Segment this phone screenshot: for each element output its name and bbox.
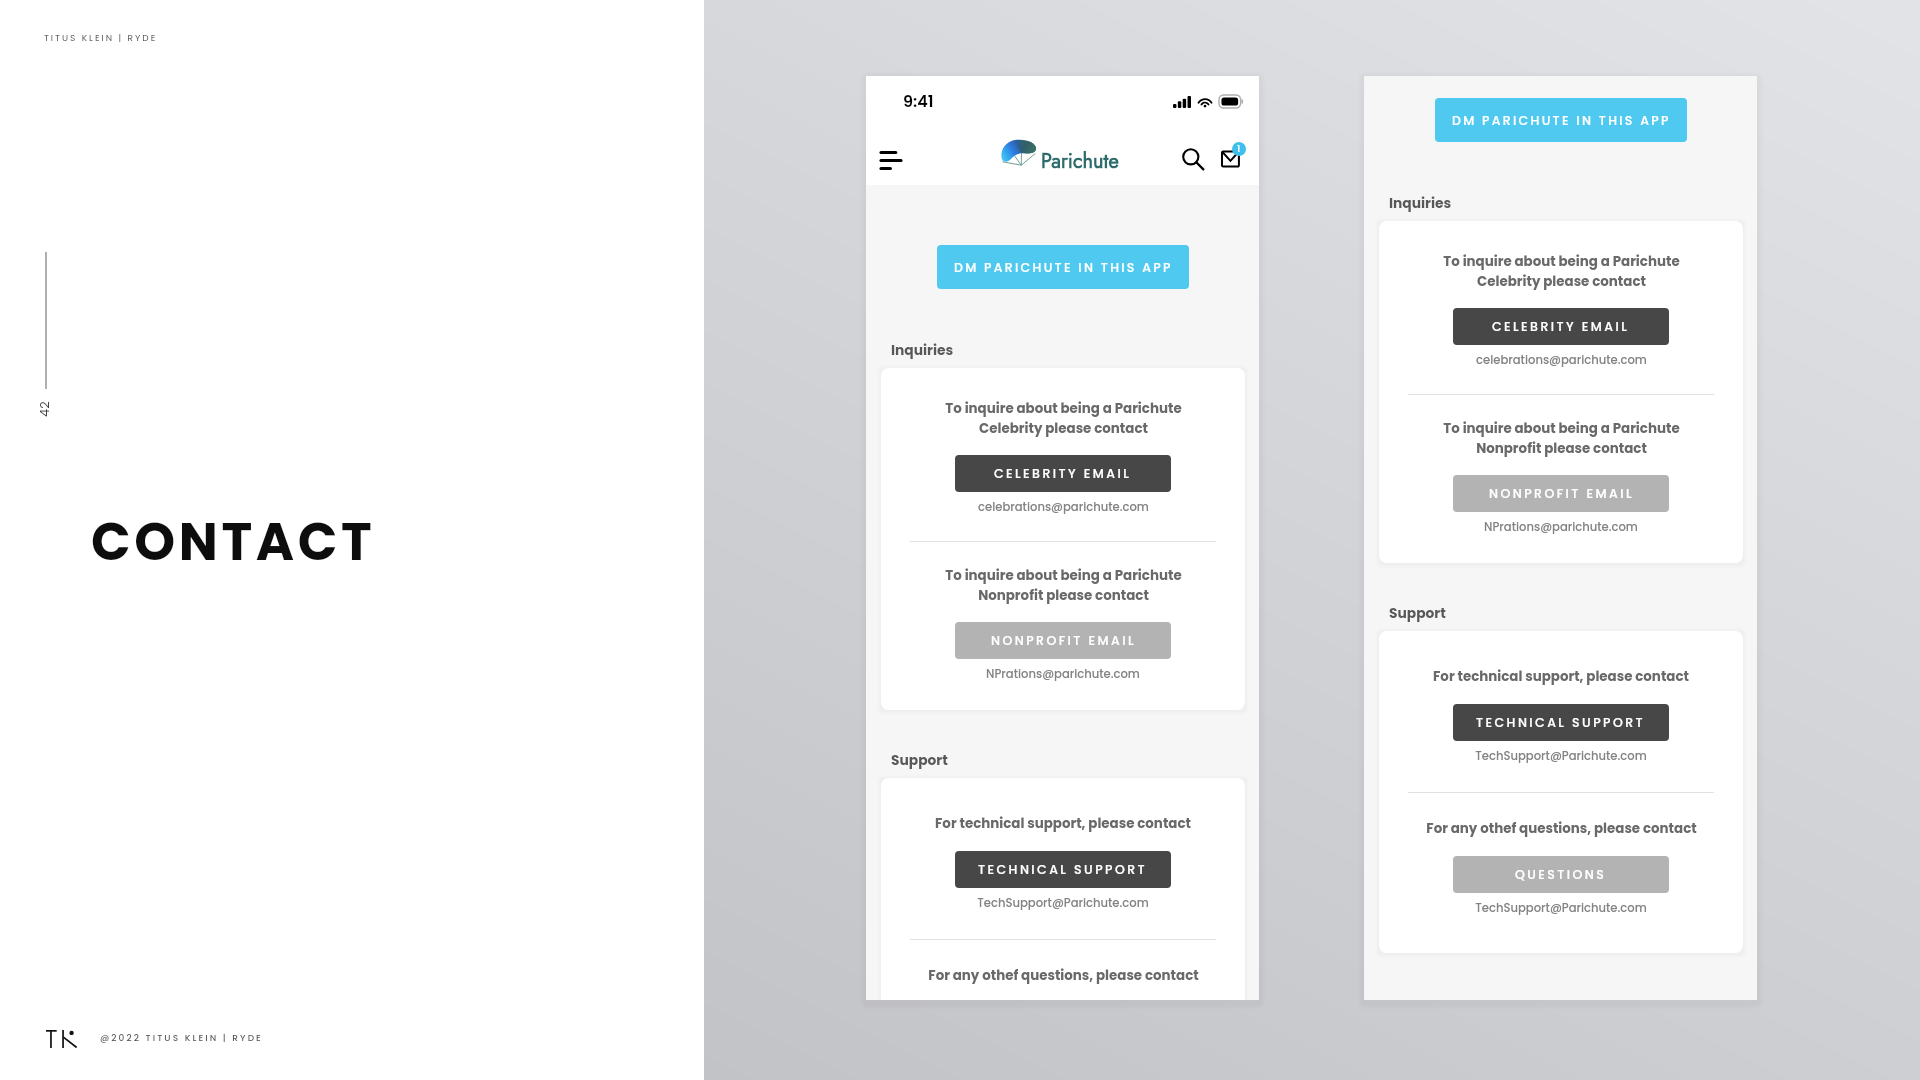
button[interactable]: QUESTIONS xyxy=(1453,856,1669,893)
staticText: celebrations@parichute.com xyxy=(1476,352,1647,368)
staticText: For any othef questions, please contact xyxy=(1426,819,1697,838)
staticText: To inquire about being a Parichute Celeb… xyxy=(1443,252,1680,290)
staticText: Support xyxy=(1389,604,1446,623)
button[interactable]: Menu xyxy=(873,142,909,178)
staticText: @2022 TITUS KLEIN | RYDE xyxy=(100,1032,263,1045)
button[interactable]: TECHNICAL SUPPORT xyxy=(1453,704,1669,741)
staticText: For technical support, please contact xyxy=(1433,667,1689,686)
staticText: CONTACT xyxy=(91,505,376,578)
button[interactable]: DM PARICHUTE IN THIS APP xyxy=(937,245,1189,289)
button[interactable]: DM PARICHUTE IN THIS APP xyxy=(1435,98,1687,142)
staticText: CELEBRITY EMAIL xyxy=(994,465,1132,482)
staticText: For technical support, please contact xyxy=(935,814,1191,833)
button[interactable]: TECHNICAL SUPPORT xyxy=(955,851,1171,888)
staticText: TITUS KLEIN | RYDE xyxy=(44,32,158,45)
button[interactable]: CELEBRITY EMAIL xyxy=(1453,308,1669,345)
staticText: TechSupport@Parichute.com xyxy=(1475,748,1647,764)
button[interactable]: NONPROFIT EMAIL xyxy=(1453,475,1669,512)
staticText: Support xyxy=(891,751,948,770)
staticText: NPrations@parichute.com xyxy=(986,666,1140,682)
staticText: Parichute xyxy=(1041,147,1119,176)
staticText: NPrations@parichute.com xyxy=(1484,519,1638,535)
staticText: TECHNICAL SUPPORT xyxy=(1476,714,1646,731)
staticText: QUESTIONS xyxy=(1515,866,1607,883)
staticText: Inquiries xyxy=(891,341,954,360)
staticText: To inquire about being a Parichute Nonpr… xyxy=(945,566,1182,604)
button[interactable]: Messages xyxy=(1213,138,1249,174)
staticText: TechSupport@Parichute.com xyxy=(1475,900,1647,916)
staticText: TECHNICAL SUPPORT xyxy=(978,861,1148,878)
staticText: CELEBRITY EMAIL xyxy=(1492,318,1630,335)
staticText: DM PARICHUTE IN THIS APP xyxy=(954,259,1173,276)
staticText: NONPROFIT EMAIL xyxy=(1489,485,1634,502)
button[interactable]: CELEBRITY EMAIL xyxy=(955,455,1171,492)
staticText: To inquire about being a Parichute Nonpr… xyxy=(1443,419,1680,457)
staticText: 9:41 xyxy=(903,90,934,112)
staticText: To inquire about being a Parichute Celeb… xyxy=(945,399,1182,437)
button[interactable]: Search xyxy=(1175,141,1211,177)
staticText: DM PARICHUTE IN THIS APP xyxy=(1452,112,1671,129)
staticText: TechSupport@Parichute.com xyxy=(977,895,1149,911)
button[interactable]: NONPROFIT EMAIL xyxy=(955,622,1171,659)
staticText: Inquiries xyxy=(1389,194,1452,213)
staticText: For any othef questions, please contact xyxy=(928,966,1199,985)
staticText: 42 xyxy=(35,401,53,417)
staticText: celebrations@parichute.com xyxy=(978,499,1149,515)
staticText: NONPROFIT EMAIL xyxy=(991,632,1136,649)
staticText: 1 xyxy=(1237,143,1241,156)
